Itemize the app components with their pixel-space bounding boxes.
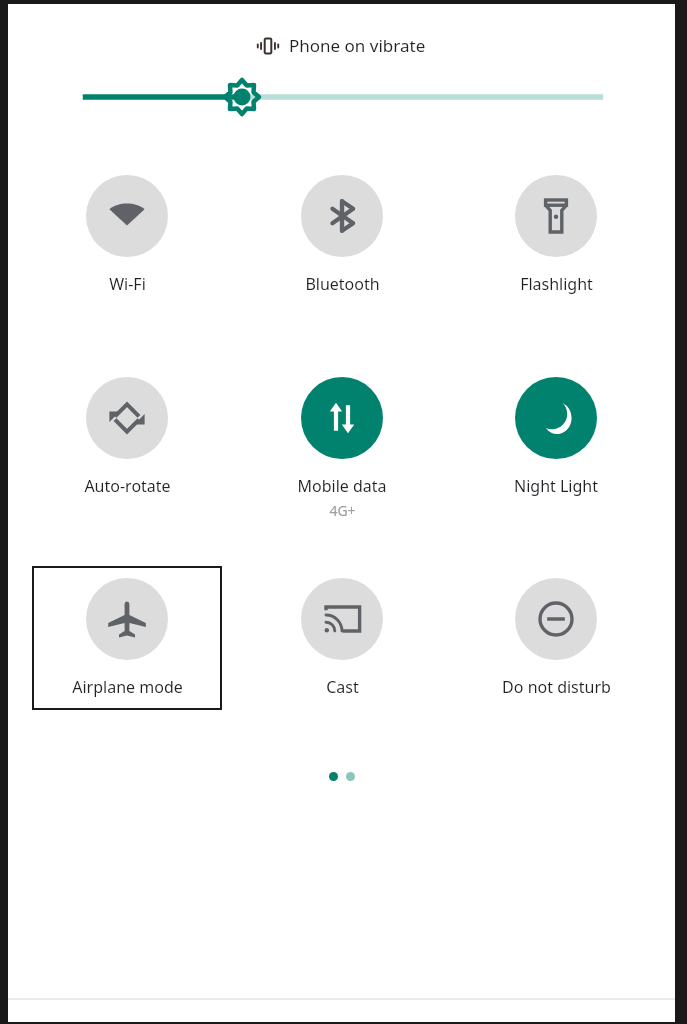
staticText: Cast <box>326 676 359 698</box>
button[interactable]: Flashlight <box>461 163 651 307</box>
button[interactable]: Do not disturb <box>461 566 651 710</box>
button[interactable]: Mobile data <box>247 365 437 532</box>
staticText: Do not disturb <box>502 676 611 698</box>
staticText: Wi-Fi <box>109 273 146 295</box>
button[interactable]: Airplane mode <box>32 566 222 710</box>
button[interactable]: Night Light <box>461 365 651 509</box>
staticText: 4G+ <box>329 501 356 520</box>
staticText: Phone on vibrate <box>289 34 426 57</box>
button[interactable]: Brightness <box>8 79 675 115</box>
staticText: Airplane mode <box>72 676 183 698</box>
button[interactable]: Bluetooth <box>247 163 437 307</box>
button[interactable]: Cast <box>247 566 437 710</box>
staticText: Auto-rotate <box>84 475 171 497</box>
button[interactable]: Wi-Fi <box>32 163 222 307</box>
staticText: Bluetooth <box>305 273 380 295</box>
staticText: Flashlight <box>520 273 593 295</box>
button[interactable]: Auto-rotate <box>32 365 222 509</box>
staticText: Mobile data <box>297 475 387 497</box>
staticText: Night Light <box>514 475 598 497</box>
